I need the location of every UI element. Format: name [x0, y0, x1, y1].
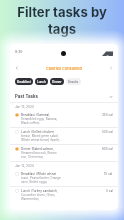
button[interactable]: Snacks	[66, 78, 81, 85]
button[interactable]: Sort	[109, 95, 113, 99]
staticText: Steamed broccoli, Brown rice, Green tea)	[21, 151, 57, 159]
staticText: 9:30	[15, 50, 23, 54]
staticText: Dinner	[52, 80, 62, 84]
button[interactable]: Lunch (Grilled chicken	[10, 128, 118, 144]
button[interactable]: Lunch	[35, 78, 48, 85]
button[interactable]: Dinner	[50, 78, 64, 85]
staticText: Lunch	[37, 80, 46, 84]
button[interactable]: Breakfast (Oatmeal,	[10, 111, 118, 127]
staticText: Jan 12, 2024	[15, 164, 34, 168]
staticText: breast, Mixed green salad, Whole wheat b…	[21, 134, 60, 142]
staticText: 500 cal	[102, 130, 113, 134]
button[interactable]: Breakfast (Whole wheat	[10, 170, 118, 186]
button[interactable]: Dinner (Baked salmon,	[10, 145, 118, 161]
staticText: Scrambled eggs, Banana, Black coffee)	[21, 117, 58, 125]
staticText: 10 cal	[104, 172, 113, 176]
staticText: Breakfast (Whole wheat	[21, 172, 56, 176]
staticText: Past Tasks	[15, 94, 39, 99]
button[interactable]: Back	[15, 66, 19, 70]
staticText: Breakfast	[17, 80, 31, 84]
staticText: Filter tasks by tags	[14, 4, 110, 38]
staticText: Jan 13, 2024	[15, 105, 34, 109]
staticText: toast, Peanut butter, Orange juice, Boil…	[21, 176, 61, 184]
staticText: Snacks	[68, 80, 79, 84]
button[interactable]: Breakfast	[15, 78, 33, 85]
button[interactable]: More options	[109, 66, 113, 70]
staticText: Cucumber slices, Chips, Watermelon)	[21, 193, 56, 201]
staticText: Dinner (Baked salmon,	[21, 147, 54, 151]
staticText: 5 cal	[106, 189, 113, 193]
staticText: 600 cal	[102, 147, 113, 151]
staticText: 350 cal	[102, 113, 113, 117]
staticText: Lunch (Grilled chicken	[21, 130, 54, 134]
button[interactable]: Lunch (Turkey sandwich,	[10, 187, 118, 203]
staticText: Breakfast (Oatmeal,	[21, 113, 50, 117]
staticText: Lunch (Turkey sandwich,	[21, 189, 58, 193]
staticText: Calories Consumed	[46, 66, 82, 71]
